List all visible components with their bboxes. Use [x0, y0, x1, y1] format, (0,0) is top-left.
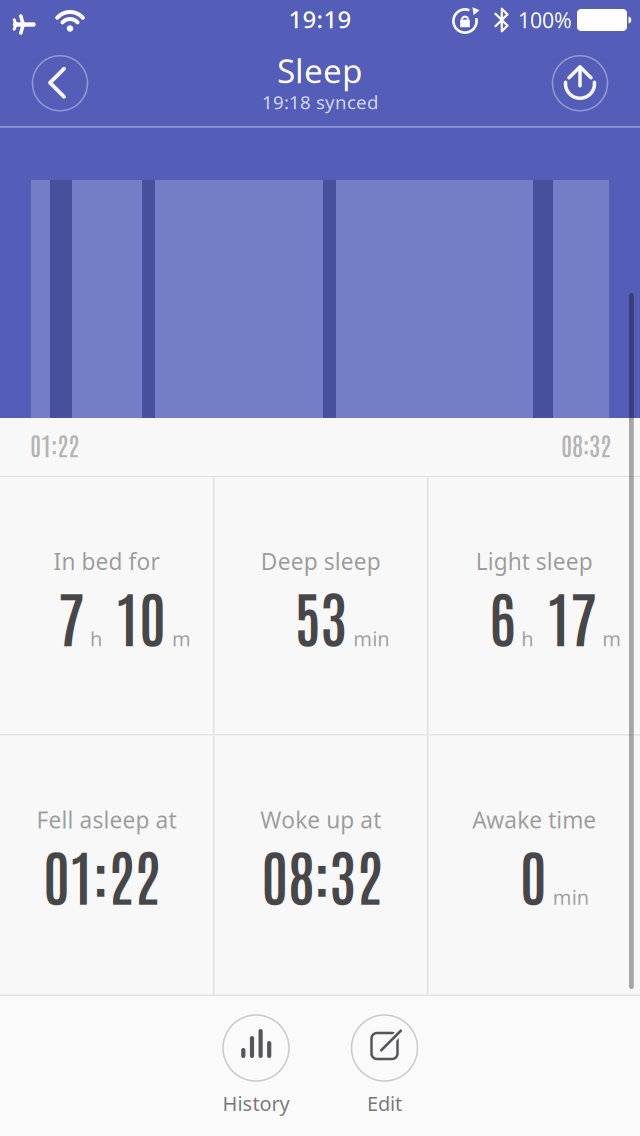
staticText: h [521, 625, 533, 652]
staticText: Edit [367, 1090, 402, 1117]
button[interactable]: Back [32, 56, 87, 111]
staticText: 17 [547, 576, 596, 655]
staticText: 19:19 [288, 3, 351, 35]
staticText: Awake time [472, 805, 596, 835]
staticText: 7 [58, 576, 84, 655]
staticText: min [353, 625, 389, 652]
staticText: Deep sleep [261, 546, 381, 576]
button[interactable]: Share [552, 56, 607, 111]
button[interactable]: Edit [351, 996, 417, 1117]
staticText: In bed for [53, 546, 159, 576]
staticText: 08:32 [261, 835, 382, 913]
staticText: 10 [116, 576, 166, 655]
staticText: Woke up at [260, 805, 381, 835]
staticText: 6 [489, 576, 515, 655]
staticText: 53 [294, 576, 347, 655]
staticText: m [172, 625, 191, 652]
staticText: 01:22 [43, 835, 160, 913]
staticText: History [222, 1090, 289, 1117]
staticText: 100% [518, 6, 572, 34]
staticText: Light sleep [476, 546, 593, 576]
staticText: 19:18 synced [262, 89, 378, 114]
staticText: Fell asleep at [36, 805, 176, 835]
staticText: 01:22 [30, 427, 79, 461]
button[interactable]: History [222, 996, 289, 1117]
staticText: m [602, 625, 621, 652]
staticText: h [90, 625, 102, 652]
staticText: 0 [520, 835, 547, 913]
staticText: 08:32 [561, 427, 611, 461]
staticText: Sleep [277, 48, 363, 92]
staticText: min [553, 884, 589, 910]
